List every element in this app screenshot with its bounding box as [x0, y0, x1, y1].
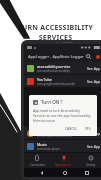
staticText: Setting — [86, 163, 96, 167]
staticText: com.music.player — [37, 147, 61, 151]
button[interactable]: Recents — [82, 168, 91, 177]
button[interactable]: YouTube — [24, 75, 101, 87]
button[interactable]: Connection — [24, 153, 50, 168]
button[interactable]: Record — [95, 52, 100, 61]
button[interactable]: Home — [60, 168, 69, 177]
button[interactable]: Applications — [50, 153, 77, 168]
staticText: Turn ON ? — [41, 99, 63, 105]
staticText: Music — [37, 142, 48, 147]
button[interactable]: accessibility.service — [24, 62, 101, 74]
staticText: Connection — [30, 163, 45, 167]
staticText: com.android.accessibility — [37, 69, 70, 73]
button[interactable]: See App — [87, 131, 101, 136]
staticText: com.google.android.youtube — [37, 82, 76, 86]
staticText: AppLogger - AppNote Logger — [28, 54, 84, 59]
button[interactable]: See App — [87, 79, 101, 84]
button[interactable]: Search — [84, 52, 93, 61]
button[interactable]: See App — [87, 66, 101, 71]
button[interactable]: Browser Menu — [24, 127, 101, 139]
button[interactable]: YES — [83, 126, 93, 132]
button[interactable]: CANCEL — [63, 126, 80, 132]
button[interactable]: Setting — [77, 153, 101, 168]
staticText: accessibility.service — [37, 64, 71, 69]
staticText: com.browser.menu.access — [37, 134, 72, 138]
staticText: CANCEL — [65, 127, 78, 131]
staticText: App want to turn Accessibility Services … — [33, 108, 93, 123]
button[interactable]: See App — [87, 144, 101, 149]
staticText: Applications — [55, 163, 72, 167]
staticText: TURN ACCESSIBILITY SERVICES — [14, 23, 97, 43]
staticText: YouTube — [37, 77, 52, 82]
button[interactable]: Music — [24, 140, 101, 152]
button[interactable]: Back — [37, 168, 46, 177]
staticText: YES — [85, 127, 91, 131]
